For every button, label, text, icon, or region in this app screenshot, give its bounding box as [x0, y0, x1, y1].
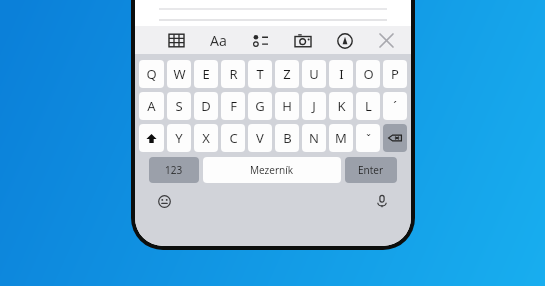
button[interactable]: Camera	[292, 30, 313, 51]
staticText: J	[312, 97, 316, 115]
button[interactable]: U	[302, 60, 326, 88]
staticText: Aa	[210, 31, 227, 50]
button[interactable]: Backspace	[383, 124, 407, 152]
button[interactable]: H	[275, 92, 299, 120]
button[interactable]: Y	[167, 124, 191, 152]
button[interactable]: L	[356, 92, 380, 120]
button[interactable]: Shift	[139, 124, 164, 152]
staticText: H	[282, 97, 292, 115]
button[interactable]: D	[194, 92, 218, 120]
button[interactable]: O	[356, 60, 380, 88]
button[interactable]: Close	[376, 30, 397, 51]
staticText: Q	[146, 65, 157, 83]
button[interactable]: I	[329, 60, 353, 88]
staticText: R	[229, 65, 238, 83]
button[interactable]: 123	[149, 157, 199, 183]
staticText: M	[335, 129, 347, 147]
staticText: O	[363, 65, 374, 83]
button[interactable]: Emoji	[154, 191, 174, 211]
staticText: P	[391, 65, 399, 83]
button[interactable]: Table	[166, 30, 187, 51]
button[interactable]: B	[275, 124, 299, 152]
button[interactable]: G	[248, 92, 272, 120]
staticText: Enter	[358, 163, 384, 177]
staticText: B	[283, 129, 292, 147]
button[interactable]: T	[248, 60, 272, 88]
button[interactable]: ´	[383, 92, 407, 120]
button[interactable]: Z	[275, 60, 299, 88]
staticText: E	[202, 65, 210, 83]
button[interactable]: Text format	[208, 30, 229, 51]
staticText: 123	[165, 163, 183, 177]
staticText: U	[309, 65, 319, 83]
staticText: F	[230, 97, 237, 115]
button[interactable]: N	[302, 124, 326, 152]
button[interactable]: M	[329, 124, 353, 152]
staticText: Mezerník	[250, 163, 294, 177]
button[interactable]: J	[302, 92, 326, 120]
button[interactable]: ˇ	[356, 124, 380, 152]
button[interactable]: Q	[139, 60, 164, 88]
staticText: D	[201, 97, 211, 115]
button[interactable]: X	[194, 124, 218, 152]
staticText: I	[339, 65, 344, 83]
staticText: A	[147, 97, 156, 115]
button[interactable]: V	[248, 124, 272, 152]
button[interactable]: P	[383, 60, 407, 88]
staticText: L	[365, 97, 372, 115]
staticText: N	[309, 129, 319, 147]
button[interactable]: K	[329, 92, 353, 120]
staticText: V	[256, 129, 264, 147]
button[interactable]: Dictation	[372, 191, 392, 211]
button[interactable]: Mezerník	[203, 157, 341, 183]
button[interactable]: Enter	[345, 157, 397, 183]
button[interactable]: S	[167, 92, 191, 120]
button[interactable]: E	[194, 60, 218, 88]
button[interactable]: F	[221, 92, 245, 120]
staticText: C	[229, 129, 238, 147]
button[interactable]: A	[139, 92, 164, 120]
staticText: Z	[283, 65, 291, 83]
button[interactable]: Checklist	[250, 30, 271, 51]
staticText: ´	[393, 97, 397, 115]
staticText: K	[337, 97, 346, 115]
staticText: X	[202, 129, 210, 147]
staticText: W	[173, 65, 186, 83]
staticText: S	[175, 97, 183, 115]
button[interactable]: Markup	[334, 30, 355, 51]
staticText: T	[256, 65, 264, 83]
staticText: ˇ	[366, 131, 371, 146]
button[interactable]: W	[167, 60, 191, 88]
button[interactable]: C	[221, 124, 245, 152]
staticText: G	[255, 97, 265, 115]
button[interactable]: R	[221, 60, 245, 88]
staticText: Y	[175, 129, 183, 147]
